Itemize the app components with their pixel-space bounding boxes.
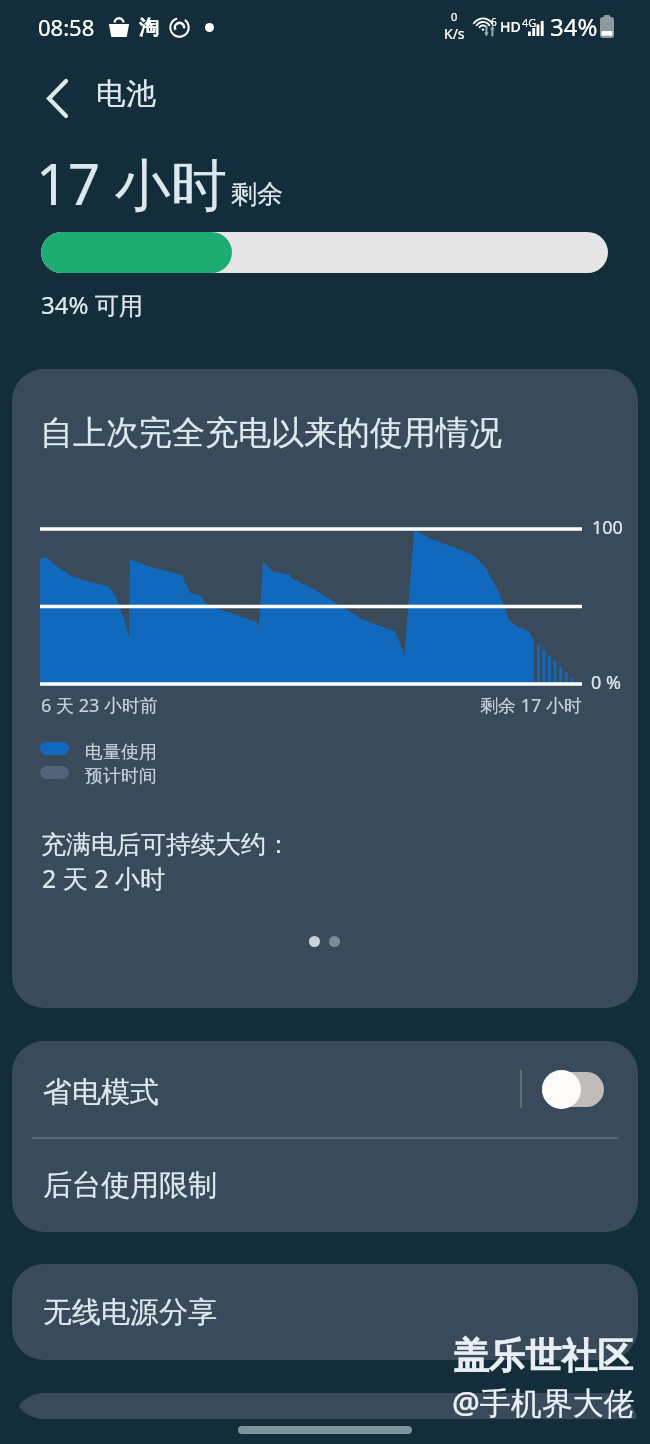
- staticText: 0 %: [591, 670, 621, 695]
- staticText: 6 天 23 小时前: [41, 693, 158, 718]
- button[interactable]: Back: [28, 65, 86, 123]
- staticText: 盖乐世社区: [453, 1333, 633, 1378]
- button[interactable]: 无线电源分享: [12, 1264, 638, 1360]
- button[interactable]: 自上次完全充电以来的使用情况: [12, 369, 638, 1008]
- staticText: 0: [451, 9, 458, 24]
- staticText: 34%: [550, 10, 598, 43]
- staticText: 100: [592, 515, 623, 540]
- button[interactable]: 省电模式: [542, 1072, 604, 1107]
- staticText: 无线电源分享: [43, 1294, 217, 1331]
- staticText: 充满电后可持续大约：: [41, 829, 291, 860]
- staticText: 34% 可用: [41, 288, 143, 321]
- staticText: @手机界大佬: [452, 1381, 635, 1423]
- staticText: 淘: [139, 15, 159, 40]
- button[interactable]: [12, 1393, 638, 1419]
- button[interactable]: 后台使用限制: [12, 1139, 638, 1232]
- staticText: 自上次完全充电以来的使用情况: [40, 412, 502, 454]
- staticText: 电量使用: [85, 741, 157, 764]
- staticText: HD: [500, 17, 521, 36]
- staticText: 6: [491, 15, 497, 29]
- staticText: 省电模式: [43, 1074, 159, 1111]
- staticText: 预计时间: [85, 765, 157, 788]
- staticText: 2 天 2 小时: [42, 861, 166, 895]
- staticText: 剩余 17 小时: [480, 693, 582, 718]
- staticText: 08:58: [38, 12, 95, 42]
- staticText: 电池: [96, 75, 156, 113]
- staticText: K/s: [444, 24, 465, 43]
- staticText: 17 小时: [36, 145, 227, 221]
- staticText: 4G: [522, 15, 537, 30]
- staticText: 后台使用限制: [43, 1167, 217, 1204]
- staticText: 剩余: [231, 178, 283, 211]
- button[interactable]: 省电模式: [12, 1041, 638, 1137]
